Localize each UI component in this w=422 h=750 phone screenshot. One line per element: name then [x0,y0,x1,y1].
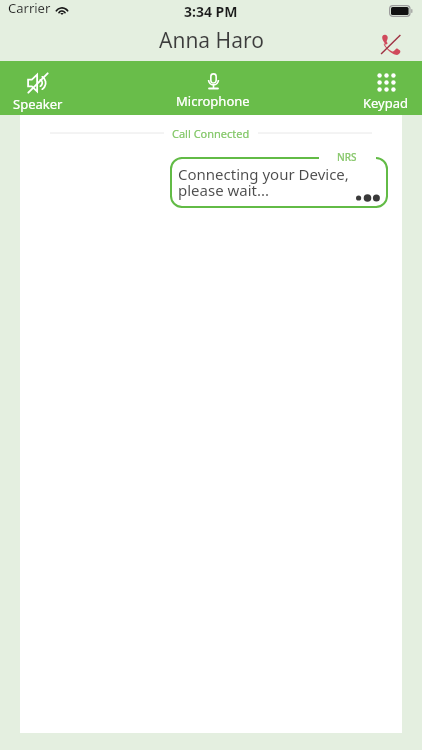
staticText: Microphone [176,92,250,110]
button[interactable]: Speaker [13,61,63,115]
staticText: Call Connected [172,126,250,141]
button[interactable]: Keypad [363,61,409,115]
staticText: Carrier [8,0,51,17]
staticText: Connecting your Device, please wait... [178,164,349,200]
staticText: 3:34 PM [184,2,238,21]
staticText: Keypad [363,94,409,112]
staticText: NRS [337,150,357,164]
staticText: Anna Haro [159,26,264,55]
button[interactable]: End call [373,26,407,60]
staticText: Speaker [13,95,63,113]
button[interactable]: Microphone [176,61,250,115]
